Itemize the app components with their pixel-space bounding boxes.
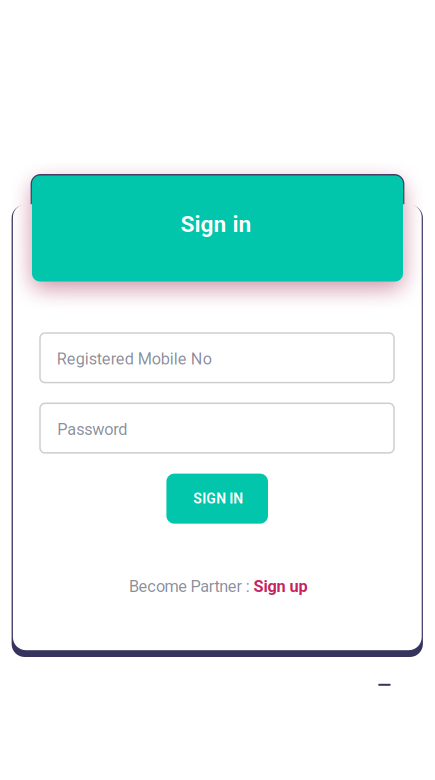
button[interactable]: Become Partner : — [125, 573, 312, 600]
button[interactable]: Password — [40, 403, 394, 453]
button[interactable]: Registered Mobile No — [40, 333, 394, 383]
staticText: Sign in — [180, 211, 251, 237]
staticText: Registered Mobile No — [57, 349, 212, 368]
staticText: SIGN IN — [193, 491, 243, 507]
staticText: Become Partner : — [129, 577, 250, 596]
button[interactable]: SIGN IN — [166, 474, 268, 524]
staticText: Password — [57, 420, 127, 439]
staticText: Sign up — [254, 577, 308, 596]
